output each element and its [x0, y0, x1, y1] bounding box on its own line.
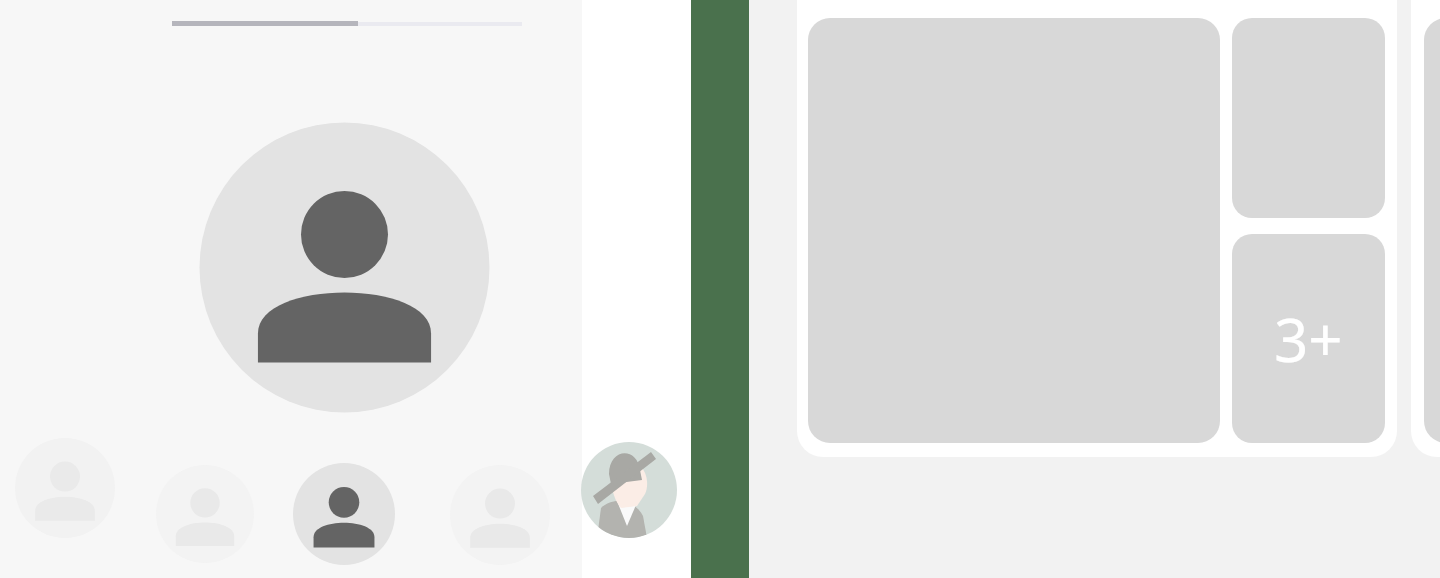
button[interactable]: Profile 1	[15, 438, 115, 538]
button[interactable]: Contact avatar	[581, 442, 677, 538]
button[interactable]: Profile 2	[156, 465, 254, 563]
button[interactable]: Selected profile	[293, 463, 395, 565]
button[interactable]: Current profile photo	[199, 122, 490, 413]
button[interactable]: Media card	[797, 0, 1397, 457]
staticText: 3+	[1274, 298, 1343, 380]
button[interactable]: 3+	[1232, 234, 1385, 443]
button[interactable]: Profile 4	[450, 465, 550, 565]
